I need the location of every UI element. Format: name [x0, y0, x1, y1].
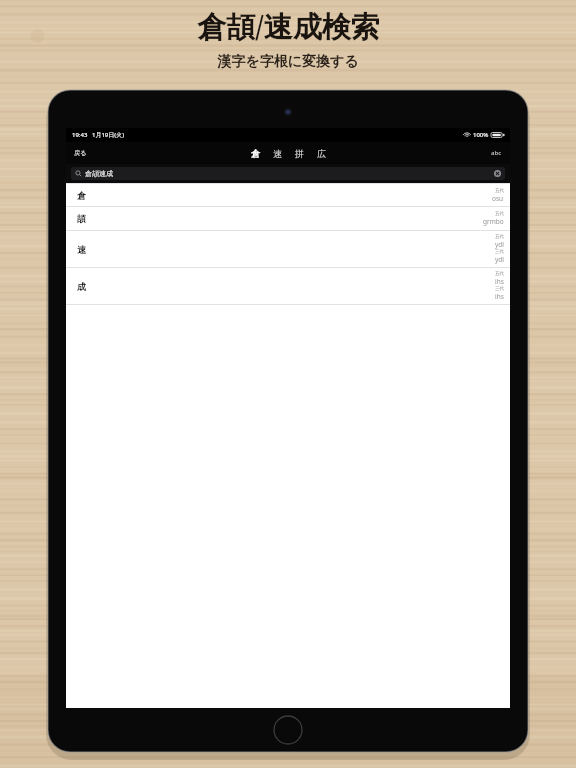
staticText: 五代 — [495, 188, 504, 194]
staticText: 五代 — [495, 234, 504, 240]
staticText: 倉 — [251, 148, 260, 159]
staticText: abc — [491, 149, 502, 157]
staticText: 五代 — [495, 271, 504, 277]
staticText: 倉頡/速成検索 — [197, 6, 380, 46]
staticText: 頡 — [77, 213, 86, 224]
staticText: 漢字を字根に変換する — [217, 53, 359, 71]
staticText: 100% — [473, 131, 489, 139]
button[interactable]: 倉 — [249, 145, 262, 162]
staticText: 倉頡速成 — [85, 169, 113, 178]
staticText: grmbo — [483, 217, 504, 226]
button[interactable]: 倉頡速成 — [71, 167, 505, 180]
staticText: 五代 — [495, 211, 504, 217]
button[interactable]: 頡 — [66, 206, 510, 230]
button[interactable]: 戻る — [66, 145, 95, 161]
staticText: ydl — [495, 255, 504, 264]
staticText: osu — [492, 194, 504, 203]
button[interactable]: 速 — [271, 145, 284, 162]
button[interactable]: 倉 — [66, 183, 510, 206]
staticText: 速 — [273, 148, 282, 159]
staticText: 成 — [77, 281, 86, 292]
staticText: 倉 — [77, 190, 86, 201]
staticText: 19:43 — [72, 131, 88, 139]
button[interactable]: 速 — [66, 230, 510, 267]
staticText: ihs — [495, 292, 504, 301]
staticText: 広 — [317, 148, 326, 159]
staticText: 戻る — [74, 149, 87, 157]
staticText: 三代 — [495, 286, 504, 292]
button[interactable]: Clear search — [493, 169, 502, 178]
button[interactable]: 広 — [315, 145, 328, 162]
staticText: ydl — [495, 240, 504, 249]
staticText: ihs — [495, 277, 504, 286]
staticText: 三代 — [495, 249, 504, 255]
staticText: 拼 — [295, 148, 304, 159]
button[interactable]: 拼 — [293, 145, 306, 162]
staticText: 1月19日(火) — [92, 131, 125, 139]
button[interactable]: abc — [483, 145, 510, 161]
staticText: 速 — [77, 244, 86, 255]
button[interactable]: 成 — [66, 267, 510, 304]
